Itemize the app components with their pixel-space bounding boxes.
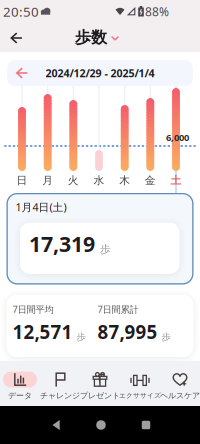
button[interactable]: 火 [60, 86, 86, 193]
button[interactable]: 木 [112, 86, 138, 193]
staticText: 歩 [100, 243, 111, 256]
staticText: 金 [145, 174, 156, 187]
staticText: 土 [170, 174, 181, 187]
staticText: チャレンジ [40, 391, 80, 400]
button[interactable]: データ [0, 358, 40, 408]
staticText: 17,319 [29, 229, 95, 258]
staticText: 歩 [76, 331, 85, 343]
staticText: 2024/12/29 - 2025/1/4 [45, 66, 154, 80]
button[interactable] [142, 421, 150, 429]
staticText: 水 [93, 174, 104, 187]
button[interactable] [51, 419, 60, 430]
staticText: 日 [16, 174, 27, 187]
staticText: エクササイズ [119, 391, 161, 400]
staticText: 7日間累計 [97, 303, 138, 315]
button[interactable]: ヘルスケア [160, 358, 200, 408]
staticText: 歩数 [75, 28, 107, 47]
staticText: 木 [119, 174, 130, 187]
staticText: 火 [68, 174, 79, 187]
staticText: 歩 [161, 331, 170, 343]
button[interactable]: 日 [9, 86, 35, 193]
staticText: 7日間平均 [12, 303, 53, 315]
staticText: ヘルスケア [160, 391, 200, 400]
staticText: 87,995 [97, 319, 157, 344]
button[interactable]: 歩数 [75, 28, 119, 47]
staticText: 6,000 [166, 131, 189, 144]
button[interactable] [96, 420, 106, 430]
button[interactable]: エクササイズ [120, 358, 160, 408]
staticText: 88% [145, 3, 169, 19]
button[interactable]: チャレンジ [40, 358, 80, 408]
staticText: 12,571 [12, 319, 72, 344]
button[interactable]: 水 [86, 86, 112, 193]
button[interactable]: 土 [163, 86, 189, 193]
button[interactable]: 2024/12/29 - 2025/1/4 [7, 60, 193, 86]
staticText: プレゼント [80, 391, 120, 400]
staticText: データ [8, 391, 32, 400]
button[interactable]: プレゼント [80, 358, 120, 408]
staticText: 1月4日(土) [15, 200, 66, 214]
button[interactable]: 月 [35, 86, 61, 193]
button[interactable] [4, 26, 28, 50]
staticText: 月 [42, 174, 53, 187]
button[interactable]: 金 [137, 86, 163, 193]
staticText: 20:50 [3, 3, 39, 20]
